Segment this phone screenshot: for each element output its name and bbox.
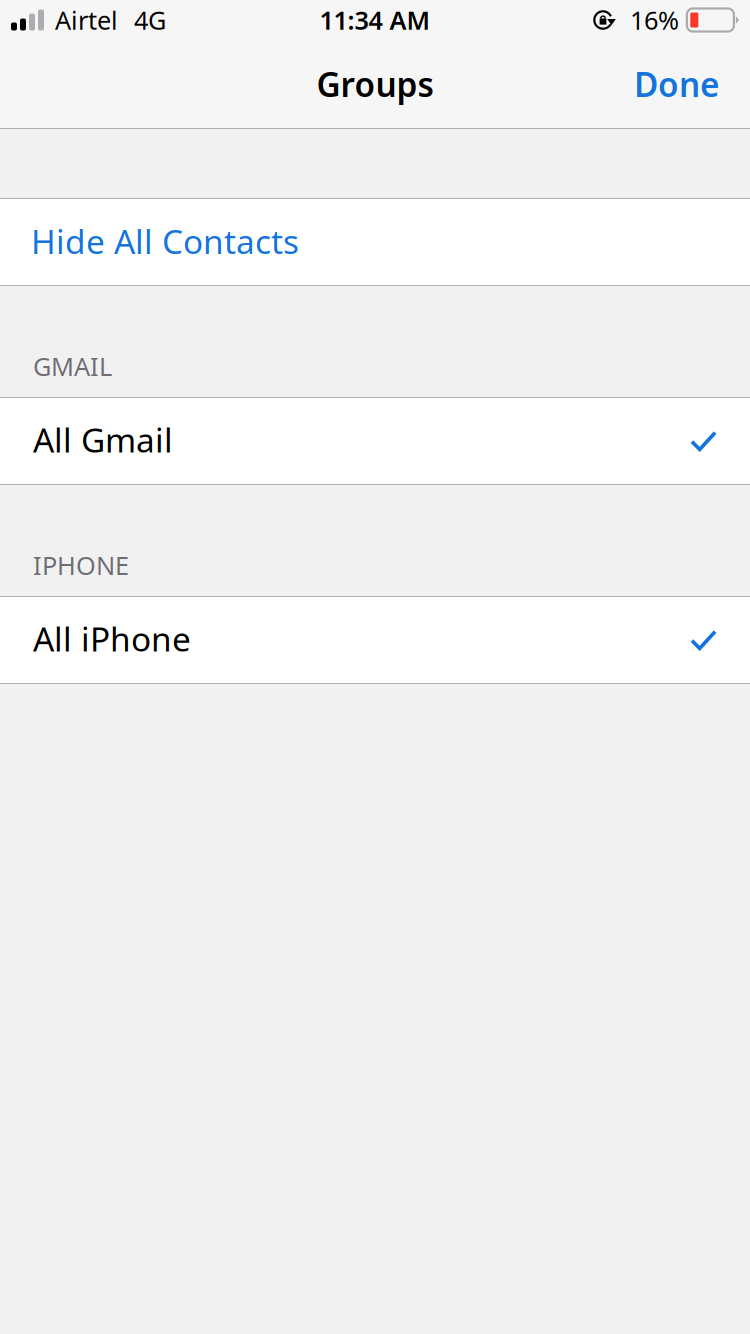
staticText: All iPhone (33, 616, 191, 661)
staticText: 16% (630, 3, 679, 37)
staticText: Airtel (55, 3, 118, 37)
staticText: Done (634, 62, 720, 106)
staticText: IPHONE (33, 548, 129, 582)
button[interactable]: Done (610, 48, 750, 120)
staticText: GMAIL (33, 349, 112, 383)
button[interactable]: Hide All Contacts (0, 199, 750, 285)
staticText: 11:34 AM (319, 3, 430, 37)
button[interactable]: All Gmail (0, 398, 750, 484)
staticText: All Gmail (33, 417, 173, 462)
staticText: 4G (134, 3, 166, 37)
staticText: Hide All Contacts (31, 219, 299, 263)
button[interactable]: All iPhone (0, 597, 750, 683)
staticText: Groups (316, 62, 433, 106)
